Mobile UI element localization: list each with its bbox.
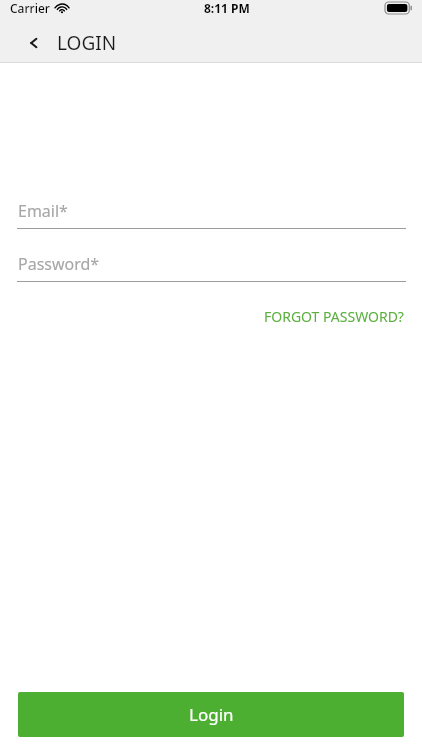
button[interactable]: Email* — [0, 194, 422, 229]
button[interactable]: Back — [18, 27, 50, 59]
staticText: Password* — [18, 253, 100, 275]
button[interactable]: Login — [18, 692, 404, 737]
button[interactable]: Password* — [0, 247, 422, 282]
staticText: 8:11 PM — [204, 0, 250, 16]
staticText: Login — [189, 703, 234, 726]
staticText: Email* — [18, 200, 68, 222]
staticText: FORGOT PASSWORD? — [264, 307, 404, 326]
staticText: LOGIN — [57, 30, 117, 56]
staticText: Carrier — [10, 0, 50, 16]
button[interactable]: FORGOT PASSWORD? — [262, 304, 406, 329]
